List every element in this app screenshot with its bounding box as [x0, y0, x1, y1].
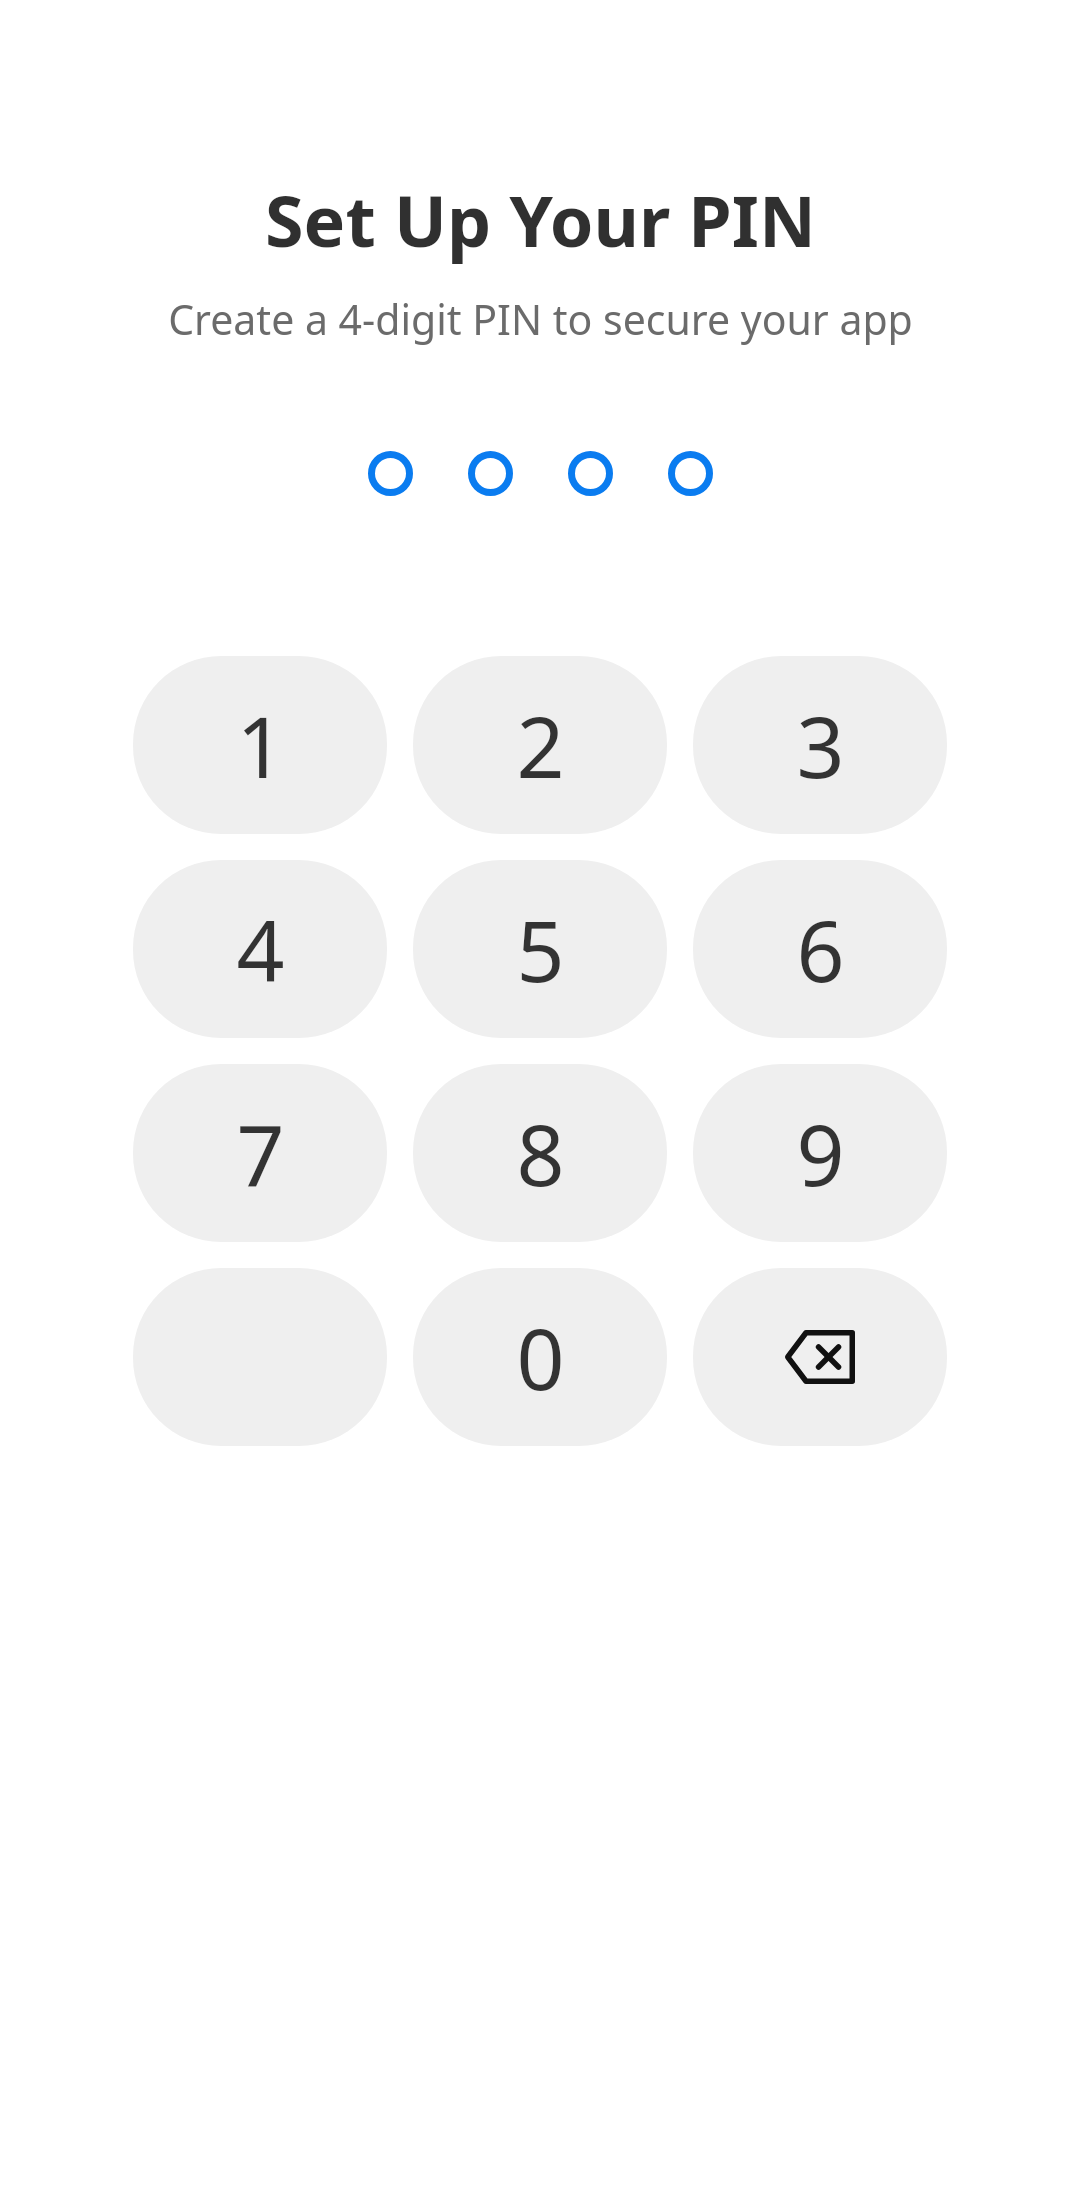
button[interactable]: 2 — [413, 656, 667, 834]
button[interactable]: Blank key — [133, 1268, 387, 1446]
staticText: 9 — [796, 1096, 845, 1210]
button[interactable]: 4 — [133, 860, 387, 1038]
staticText: 2 — [516, 688, 565, 802]
button[interactable]: 5 — [413, 860, 667, 1038]
staticText: 4 — [236, 892, 285, 1006]
button[interactable]: 8 — [413, 1064, 667, 1242]
button[interactable]: 9 — [693, 1064, 947, 1242]
staticText: Create a 4-digit PIN to secure your app — [168, 291, 913, 347]
staticText: 3 — [796, 688, 845, 802]
button[interactable]: 3 — [693, 656, 947, 834]
button[interactable]: 1 — [133, 656, 387, 834]
staticText: Set Up Your PIN — [265, 172, 816, 267]
staticText: 1 — [236, 688, 285, 802]
button[interactable]: 6 — [693, 860, 947, 1038]
button[interactable]: Backspace — [693, 1268, 947, 1446]
staticText: 6 — [796, 892, 845, 1006]
button[interactable]: 7 — [133, 1064, 387, 1242]
staticText: 8 — [516, 1096, 565, 1210]
button[interactable]: 0 — [413, 1268, 667, 1446]
staticText: 0 — [516, 1300, 565, 1414]
staticText: 7 — [236, 1096, 285, 1210]
staticText: 5 — [516, 892, 565, 1006]
